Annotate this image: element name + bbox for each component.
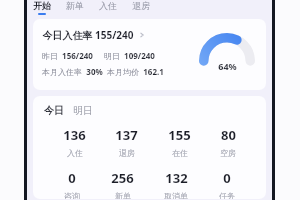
staticText: 明日 [73,104,93,117]
staticText: 0 [223,169,231,187]
staticText: 本月入住率 [42,67,82,77]
staticText: 80 [221,126,236,144]
staticText: 256 [111,169,134,187]
staticText: 156/240 [62,50,93,61]
button[interactable]: 今日入住率 155/240 [33,19,266,90]
staticText: 任务 [219,191,235,199]
staticText: 咨询 [64,191,80,199]
button[interactable]: 退房 [131,0,151,13]
staticText: 今日 [44,104,64,117]
button[interactable]: 开始 [32,0,52,15]
button[interactable]: 新单 [65,0,85,13]
button[interactable]: 80 [218,126,238,158]
staticText: 30% [86,66,103,77]
staticText: 0 [68,169,76,187]
staticText: 开始 [33,0,51,11]
button[interactable]: 132 [162,169,190,199]
staticText: 162.1 [143,66,164,77]
staticText: 137 [115,126,138,144]
other: 查看详情 [139,32,145,38]
button[interactable]: 155 [166,126,193,158]
button[interactable]: 明日 [72,104,94,117]
staticText: 136 [63,126,86,144]
staticText: 明日 [104,51,120,61]
button[interactable]: 0 [62,169,82,199]
staticText: 155 [168,126,191,144]
staticText: 新单 [115,191,131,199]
staticText: 入住 [99,0,117,11]
button[interactable]: 136 [61,126,88,158]
staticText: 退房 [119,148,135,158]
button[interactable]: 入住 [98,0,118,13]
button[interactable]: 今日 [43,104,65,117]
staticText: 空房 [220,148,236,158]
button[interactable]: 137 [113,126,140,158]
button[interactable]: 256 [109,169,136,199]
staticText: 今日入住率 155/240 [42,28,134,42]
staticText: 109/240 [124,50,155,61]
staticText: 64% [218,60,237,72]
staticText: 取消单 [164,191,188,199]
staticText: 昨日 [42,51,58,61]
staticText: 退房 [132,0,150,11]
staticText: 本月均价 [107,67,139,77]
staticText: 入住 [67,148,83,158]
staticText: 在住 [172,148,188,158]
button[interactable]: 0 [217,169,237,199]
staticText: 132 [165,169,188,187]
staticText: 新单 [66,0,84,11]
